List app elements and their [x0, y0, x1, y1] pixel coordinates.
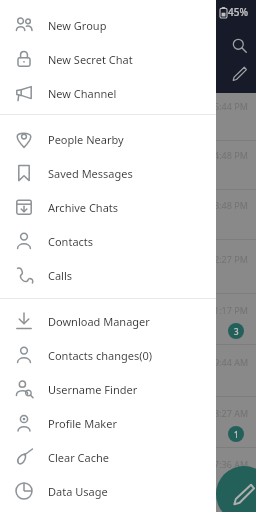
staticText: 1:17 PM [214, 304, 248, 316]
staticText: Contacts changes(0) [48, 348, 153, 363]
button[interactable]: New Group [0, 8, 216, 42]
staticText: Download Manager [48, 314, 150, 329]
staticText: 7:36 AM [214, 458, 249, 470]
staticText: Calls [48, 268, 73, 283]
staticText: 3 [234, 326, 239, 337]
staticText: Archive Chats [48, 200, 119, 215]
button[interactable]: Archive Chats [0, 190, 216, 224]
staticText: 3:48 PM [214, 199, 248, 211]
button[interactable]: Contacts changes(0) [0, 338, 216, 372]
button[interactable]: New Channel [0, 76, 216, 110]
button[interactable]: Data Usage [0, 474, 216, 508]
button[interactable]: Clear Cache [0, 440, 216, 474]
staticText: Data Usage [48, 484, 108, 499]
staticText: 4:48 PM [214, 149, 248, 161]
staticText: New Group [48, 18, 107, 33]
button[interactable]: New Secret Chat [0, 42, 216, 76]
staticText: 1 [234, 429, 239, 440]
button[interactable]: Download Manager [0, 304, 216, 338]
staticText: Profile Maker [48, 416, 117, 431]
button[interactable]: Search [228, 34, 250, 56]
staticText: People Nearby [48, 132, 124, 147]
staticText: Saved Messages [48, 166, 133, 181]
staticText: 5:44 PM [214, 100, 248, 112]
staticText: 2:27 PM [214, 253, 248, 265]
button[interactable]: Calls [0, 258, 216, 292]
staticText: 9:44 AM [214, 356, 249, 368]
staticText: New Channel [48, 86, 117, 101]
button[interactable]: Profile Maker [0, 406, 216, 440]
staticText: Clear Cache [48, 450, 109, 465]
button[interactable]: New message [216, 466, 256, 512]
button[interactable]: Saved Messages [0, 156, 216, 190]
staticText: Username Finder [48, 382, 138, 397]
staticText: 8:27 AM [214, 407, 249, 419]
staticText: 45% [228, 5, 248, 19]
button[interactable]: Username Finder [0, 372, 216, 406]
button[interactable]: Edit [228, 62, 250, 84]
button[interactable]: Contacts [0, 224, 216, 258]
button[interactable]: People Nearby [0, 122, 216, 156]
staticText: Contacts [48, 234, 94, 249]
staticText: New Secret Chat [48, 52, 133, 67]
